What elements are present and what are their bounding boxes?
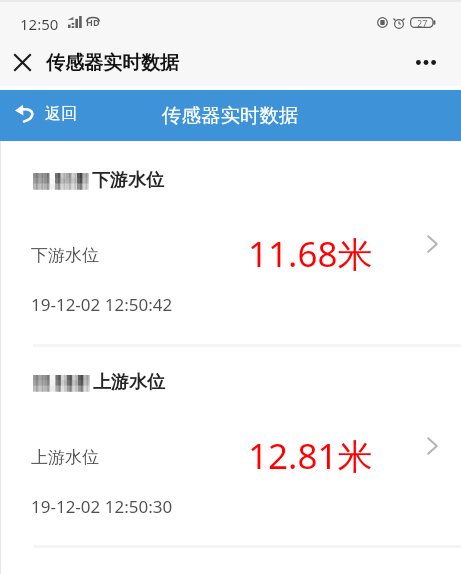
staticText: 传感器实时数据 xyxy=(162,103,299,128)
staticText: 12:50 xyxy=(20,14,59,34)
staticText: 19-12-02 12:50:30 xyxy=(31,495,173,518)
staticText: 返回 xyxy=(45,104,77,124)
staticText: 上游水位 xyxy=(31,447,99,468)
staticText: 27 xyxy=(417,17,428,28)
staticText: HD xyxy=(86,16,100,28)
staticText: 19-12-02 12:50:42 xyxy=(31,293,173,316)
staticText: 下游水位 xyxy=(92,169,164,192)
staticText: 下游水位 xyxy=(31,245,99,266)
staticText: 11.68米 xyxy=(248,230,373,278)
button[interactable]: More options xyxy=(406,42,446,82)
button[interactable]: 返回 xyxy=(11,92,81,135)
staticText: 传感器实时数据 xyxy=(46,51,179,75)
button[interactable]: Close xyxy=(4,42,41,82)
button[interactable]: 下游水位 xyxy=(0,223,461,271)
button[interactable]: 上游水位 xyxy=(0,425,461,473)
staticText: 12.81米 xyxy=(248,432,373,480)
staticText: 上游水位 xyxy=(93,371,165,394)
